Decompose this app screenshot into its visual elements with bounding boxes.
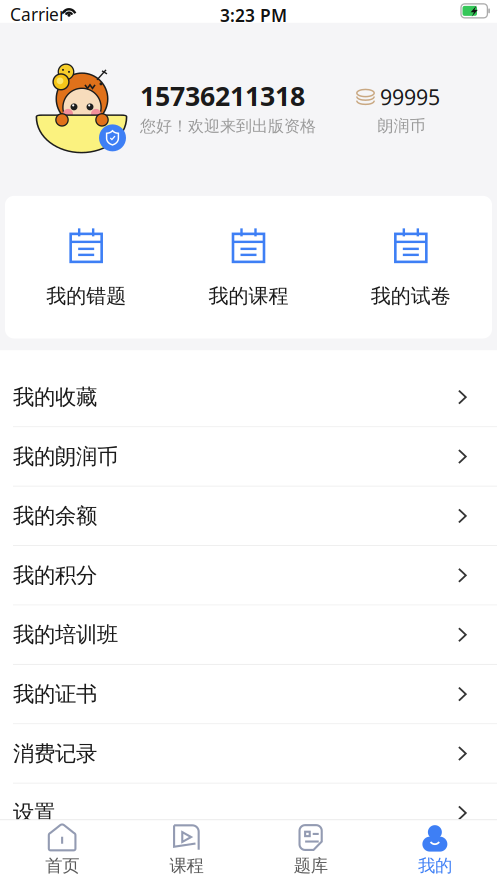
button[interactable]: 我的朗润币	[0, 427, 497, 487]
staticText: 99995	[380, 83, 440, 111]
button[interactable]: 我的证书	[0, 665, 497, 724]
staticText: Carrier	[10, 3, 66, 26]
button[interactable]: 我的	[373, 820, 497, 876]
button[interactable]: 我的试卷	[330, 229, 492, 308]
button[interactable]: 我的错题	[5, 229, 167, 308]
button[interactable]: 我的培训班	[0, 605, 497, 665]
staticText: 课程	[169, 855, 203, 876]
staticText: 设置	[13, 800, 55, 826]
staticText: 您好！欢迎来到出版资格	[140, 116, 316, 136]
button[interactable]: 设置	[0, 784, 497, 842]
staticText: 15736211318	[140, 78, 305, 113]
staticText: 3:23 PM	[220, 4, 287, 27]
staticText: 题库	[294, 855, 328, 876]
staticText: 我的	[418, 855, 452, 876]
button[interactable]: 我的积分	[0, 546, 497, 605]
staticText: 我的余额	[13, 503, 97, 529]
staticText: 我的积分	[13, 562, 97, 588]
staticText: 我的朗润币	[13, 443, 118, 470]
staticText: 首页	[45, 855, 79, 876]
staticText: 我的证书	[13, 681, 97, 707]
button[interactable]: 消费记录	[0, 724, 497, 784]
button[interactable]: 题库	[248, 820, 373, 876]
button[interactable]: 我的收藏	[0, 350, 497, 427]
button[interactable]: 课程	[124, 820, 248, 876]
staticText: 我的错题	[46, 284, 126, 308]
button[interactable]: 我的余额	[0, 487, 497, 546]
staticText: 我的收藏	[13, 384, 97, 410]
staticText: 我的课程	[208, 284, 288, 308]
staticText: 我的试卷	[371, 284, 451, 308]
staticText: 朗润币	[377, 116, 425, 136]
staticText: 消费记录	[13, 740, 97, 767]
button[interactable]: 我的课程	[167, 229, 330, 308]
staticText: 我的培训班	[13, 622, 118, 648]
button[interactable]: 首页	[0, 820, 124, 876]
